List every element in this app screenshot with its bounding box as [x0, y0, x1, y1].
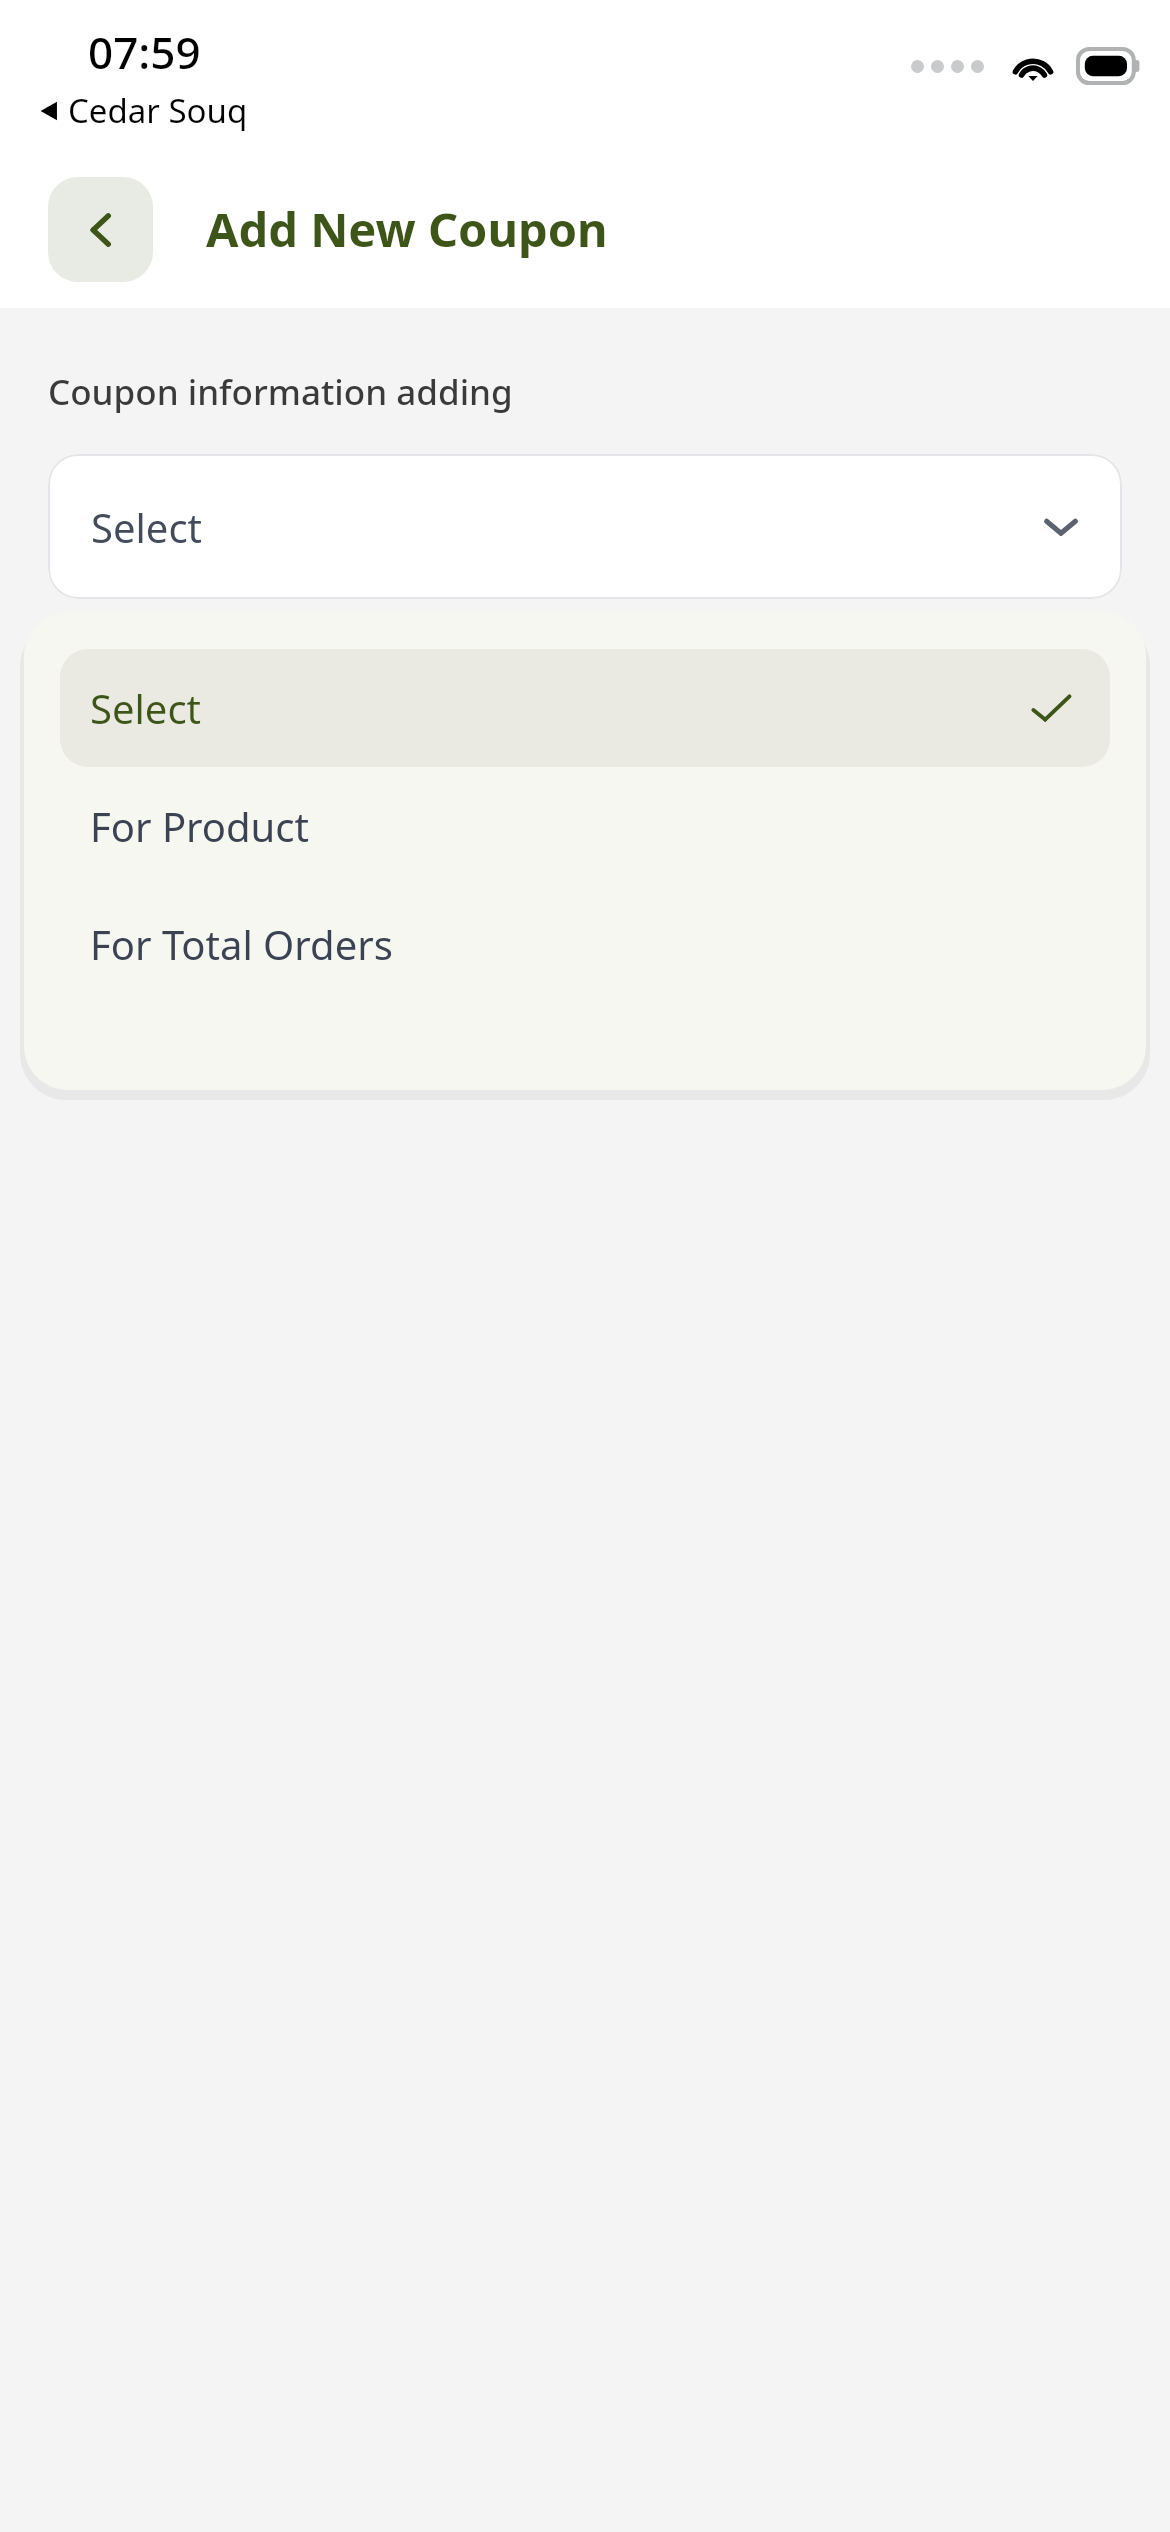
staticText: For Product — [90, 799, 309, 853]
staticText: Select — [91, 500, 203, 554]
button[interactable]: For Total Orders — [60, 885, 1110, 1003]
button[interactable]: For Product — [60, 767, 1110, 885]
staticText: Select — [90, 681, 202, 735]
button[interactable]: Select — [48, 454, 1122, 599]
button[interactable]: Select — [60, 649, 1110, 767]
other: Selected — [1028, 685, 1074, 731]
staticText: For Total Orders — [90, 917, 393, 971]
staticText: 07:59 — [88, 22, 201, 82]
button[interactable]: Back — [48, 177, 153, 282]
staticText: Coupon information adding — [48, 368, 513, 416]
staticText: Cedar Souq — [68, 88, 248, 133]
other: Expand dropdown — [1038, 504, 1084, 550]
staticText: Add New Coupon — [206, 197, 608, 261]
